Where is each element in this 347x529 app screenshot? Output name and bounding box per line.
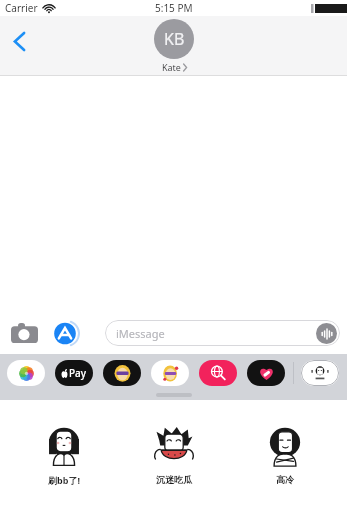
staticText: 沉迷吃瓜 (156, 474, 192, 485)
button[interactable]: iMessage (105, 320, 340, 346)
button[interactable]: App (103, 360, 141, 386)
button[interactable]: KB (154, 19, 194, 73)
button[interactable]: App (247, 360, 285, 386)
staticText: 5:15 PM (155, 1, 193, 15)
button[interactable]: Camera (8, 317, 40, 349)
staticText: Carrier (5, 1, 38, 15)
button[interactable]: App (301, 360, 339, 386)
button[interactable]: 高冷 (237, 422, 332, 485)
staticText: Kate (162, 61, 181, 73)
button[interactable]: App (151, 360, 189, 386)
button[interactable]: 沉迷吃瓜 (126, 422, 221, 485)
button[interactable]: 刷bb了! (16, 422, 111, 486)
staticText: KB (164, 28, 185, 50)
button[interactable]: App Store (50, 317, 82, 349)
staticText: iMessage (116, 326, 165, 341)
button[interactable]: App (55, 360, 93, 386)
button[interactable]: App (199, 360, 237, 386)
button[interactable]: Record audio (316, 323, 337, 344)
staticText: 刷bb了! (48, 474, 80, 486)
button[interactable]: Back (4, 26, 34, 56)
button[interactable]: App (7, 360, 45, 386)
staticText: Pay (69, 366, 87, 380)
staticText: 高冷 (276, 474, 294, 485)
